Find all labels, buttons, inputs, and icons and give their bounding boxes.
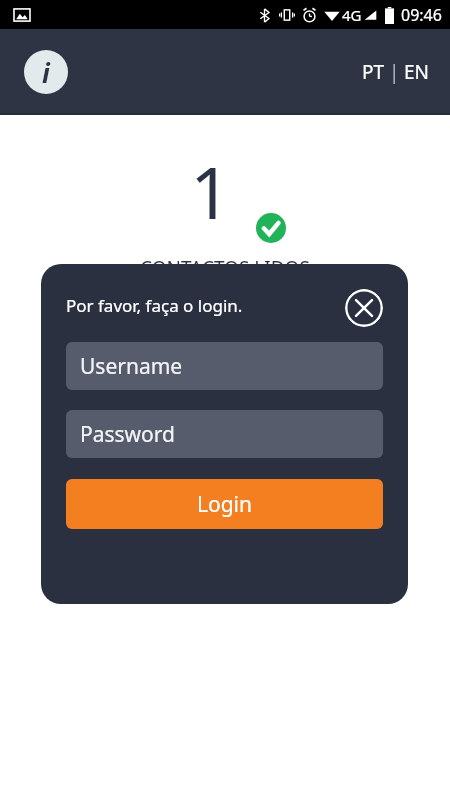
button[interactable]: Enviar contactos — [58, 431, 392, 495]
staticText: EN — [404, 59, 430, 85]
staticText: 4G — [342, 5, 362, 25]
staticText: A Last2Ticket vai organizar os seus — [58, 303, 367, 329]
button[interactable]: Username — [66, 342, 383, 390]
button[interactable]: Login — [66, 479, 383, 529]
staticText: Enviar contactos — [148, 450, 303, 477]
staticText: i — [42, 55, 50, 90]
staticText: Por favor, faça o login. — [66, 294, 243, 317]
staticText: PT — [362, 59, 385, 85]
button[interactable]: Close — [345, 289, 383, 327]
button[interactable]: Information — [24, 50, 68, 94]
staticText: Password — [80, 420, 175, 449]
staticText: CONTACTOS LIDOS — [140, 255, 310, 281]
button[interactable]: Password — [66, 410, 383, 458]
button[interactable]: PT — [358, 55, 389, 89]
staticText: 1 — [190, 142, 232, 240]
button[interactable]: EN — [400, 55, 434, 89]
staticText: Clique no botão para fazer o upload. — [58, 395, 383, 421]
staticText: Login — [197, 490, 253, 519]
staticText: contactos. — [58, 333, 150, 359]
staticText: Username — [80, 352, 183, 381]
staticText: | — [389, 59, 400, 85]
staticText: 09:46 — [401, 4, 442, 26]
